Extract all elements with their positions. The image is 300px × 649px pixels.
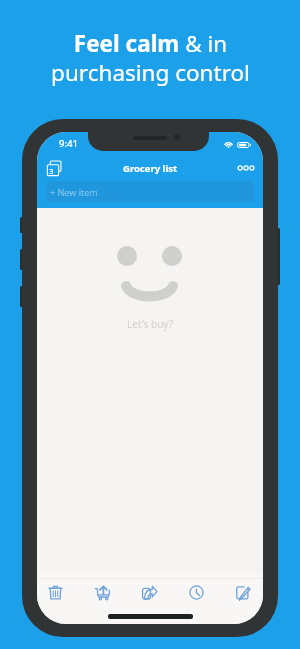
button[interactable]: Share [134,579,164,605]
staticText: Feel calm & in purchasing control [51,28,250,87]
staticText: Grocery list [123,162,178,175]
staticText: 3 [49,166,54,176]
button[interactable]: Delete [40,579,70,605]
button[interactable]: + New item [46,181,254,202]
button[interactable]: Add to cart [87,579,117,605]
button[interactable]: History [181,579,211,605]
staticText: Let's buy? [127,317,173,331]
button[interactable]: Lists [40,154,68,182]
staticText: 9:41 [59,137,78,150]
staticText: + New item [50,186,98,198]
button[interactable]: Edit [227,579,257,605]
button[interactable]: More options [232,154,260,182]
